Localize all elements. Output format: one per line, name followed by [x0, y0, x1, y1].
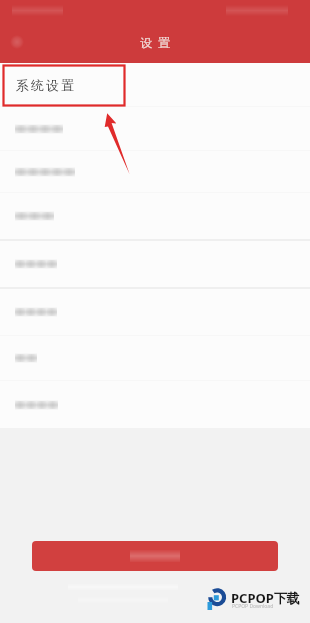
- button[interactable]: Back: [0, 25, 34, 59]
- staticText: PCPOP Download: [232, 603, 274, 610]
- staticText: 系统设置: [15, 77, 75, 93]
- button[interactable]: [0, 381, 310, 428]
- button[interactable]: 系统设置: [0, 63, 310, 106]
- button[interactable]: [32, 541, 278, 571]
- button[interactable]: [0, 193, 310, 239]
- button[interactable]: [0, 107, 310, 150]
- button[interactable]: [0, 241, 310, 287]
- button[interactable]: [0, 289, 310, 335]
- button[interactable]: [0, 336, 310, 380]
- staticText: PCPOP下载: [231, 589, 300, 607]
- button[interactable]: [0, 151, 310, 192]
- staticText: 设 置: [140, 34, 171, 50]
